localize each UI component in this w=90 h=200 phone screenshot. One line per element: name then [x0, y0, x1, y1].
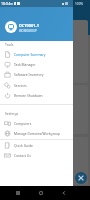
button[interactable]: Software Inventory: [0, 69, 73, 79]
staticText: 100%: [75, 2, 84, 6]
staticText: Contact Us: [14, 153, 31, 157]
staticText: Services: [14, 83, 27, 87]
staticText: DCT0001-1: [19, 23, 39, 28]
staticText: Computer Summary: [14, 52, 46, 56]
button[interactable]: Remote Shutdown: [0, 90, 73, 100]
button[interactable]: Quick Guide: [0, 140, 73, 150]
button[interactable]: Computer Summary: [0, 49, 73, 59]
staticText: Manage Domains/Workgroup: [14, 131, 60, 135]
button[interactable]: Recent apps: [13, 188, 22, 197]
button[interactable]: Contact Us: [0, 150, 73, 160]
button[interactable]: Tools: [75, 172, 87, 184]
button[interactable]: Home: [36, 188, 45, 197]
staticText: 18:04: [1, 1, 11, 6]
staticText: Quick Guide: [14, 143, 33, 147]
staticText: Task Manager: [14, 62, 36, 66]
button[interactable]: Task Manager: [0, 59, 73, 69]
staticText: Software Inventory: [14, 72, 44, 76]
button[interactable]: Computers: [0, 118, 73, 128]
button[interactable]: Back: [59, 188, 68, 197]
button[interactable]: Manage Domains/Workgroup: [0, 128, 73, 138]
staticText: WORKGROUP: [19, 29, 37, 33]
staticText: Computers: [14, 121, 32, 125]
staticText: Remote Shutdown: [14, 93, 43, 97]
staticText: Tools: [5, 42, 14, 47]
staticText: Settings: [5, 111, 19, 116]
button[interactable]: Services: [0, 80, 73, 90]
